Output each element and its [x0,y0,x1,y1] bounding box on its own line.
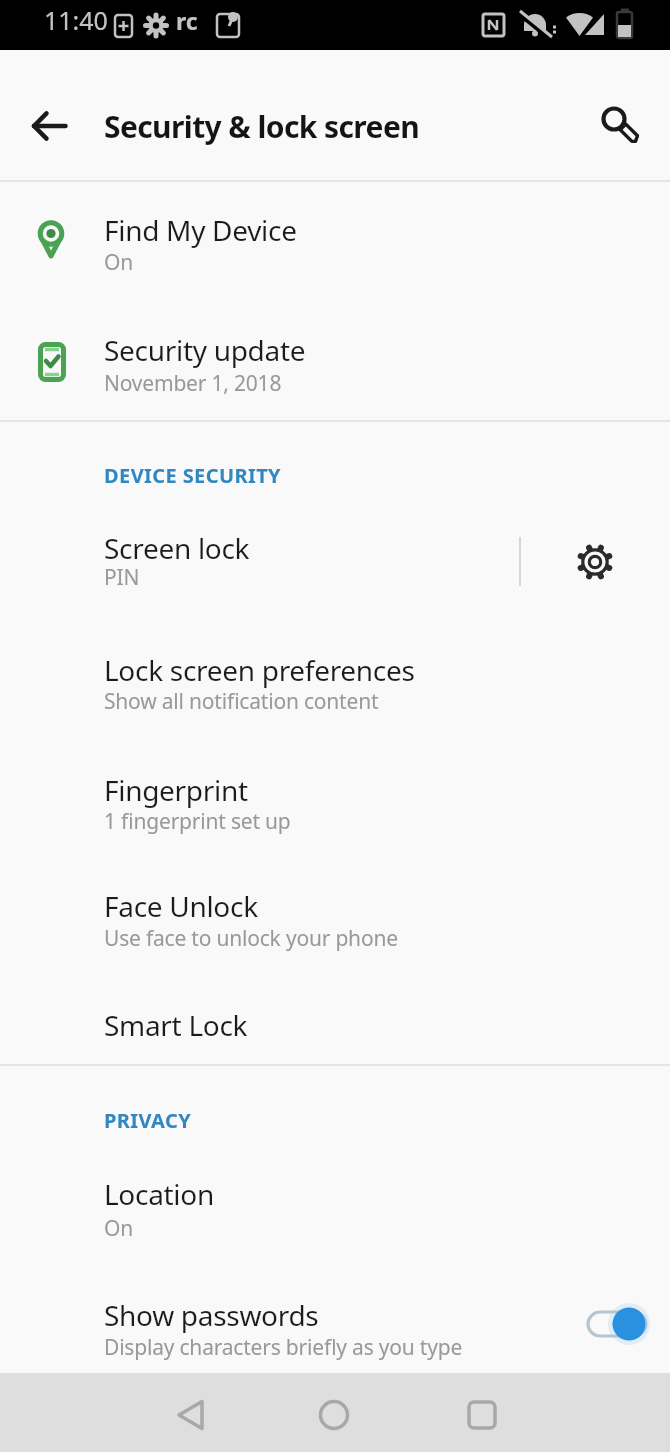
staticText: DEVICE SECURITY [104,462,281,489]
button[interactable] [455,1385,509,1439]
button[interactable]: Show passwords [0,1272,670,1373]
staticText: Face Unlock [104,887,258,925]
staticText: On [104,1214,133,1243]
staticText: Use face to unlock your phone [104,924,398,953]
staticText: 11:40 [44,3,108,37]
button[interactable]: Security update [0,300,670,420]
staticText: PIN [104,563,140,592]
staticText: Location [104,1175,214,1213]
button[interactable]: Lock screen preferences [0,628,670,733]
staticText: Smart Lock [104,1006,248,1044]
staticText: PRIVACY [104,1107,192,1134]
button[interactable] [561,528,629,596]
staticText: rc [176,5,198,36]
button[interactable] [164,1385,218,1439]
button[interactable] [307,1385,361,1439]
staticText: Find My Device [104,211,297,249]
button[interactable] [574,1300,650,1348]
button[interactable]: Location [0,1152,670,1258]
staticText: Show all notification content [104,687,379,716]
staticText: Security update [104,331,306,369]
staticText: November 1, 2018 [104,369,282,398]
staticText: Security & lock screen [104,106,420,147]
button[interactable]: Face Unlock [0,866,670,971]
staticText: Fingerprint [104,771,248,809]
staticText: Display characters briefly as you type [104,1333,463,1362]
staticText: Show passwords [104,1296,319,1334]
staticText: Lock screen preferences [104,651,415,689]
button[interactable]: Smart Lock [0,985,670,1064]
staticText: On [104,248,133,277]
staticText: 1 fingerprint set up [104,807,291,836]
button[interactable] [14,106,54,146]
button[interactable]: Find My Device [0,183,670,300]
staticText: Screen lock [104,529,250,567]
button[interactable]: Fingerprint [0,748,670,853]
button[interactable]: Screen lock [0,508,519,614]
button[interactable] [594,106,646,158]
